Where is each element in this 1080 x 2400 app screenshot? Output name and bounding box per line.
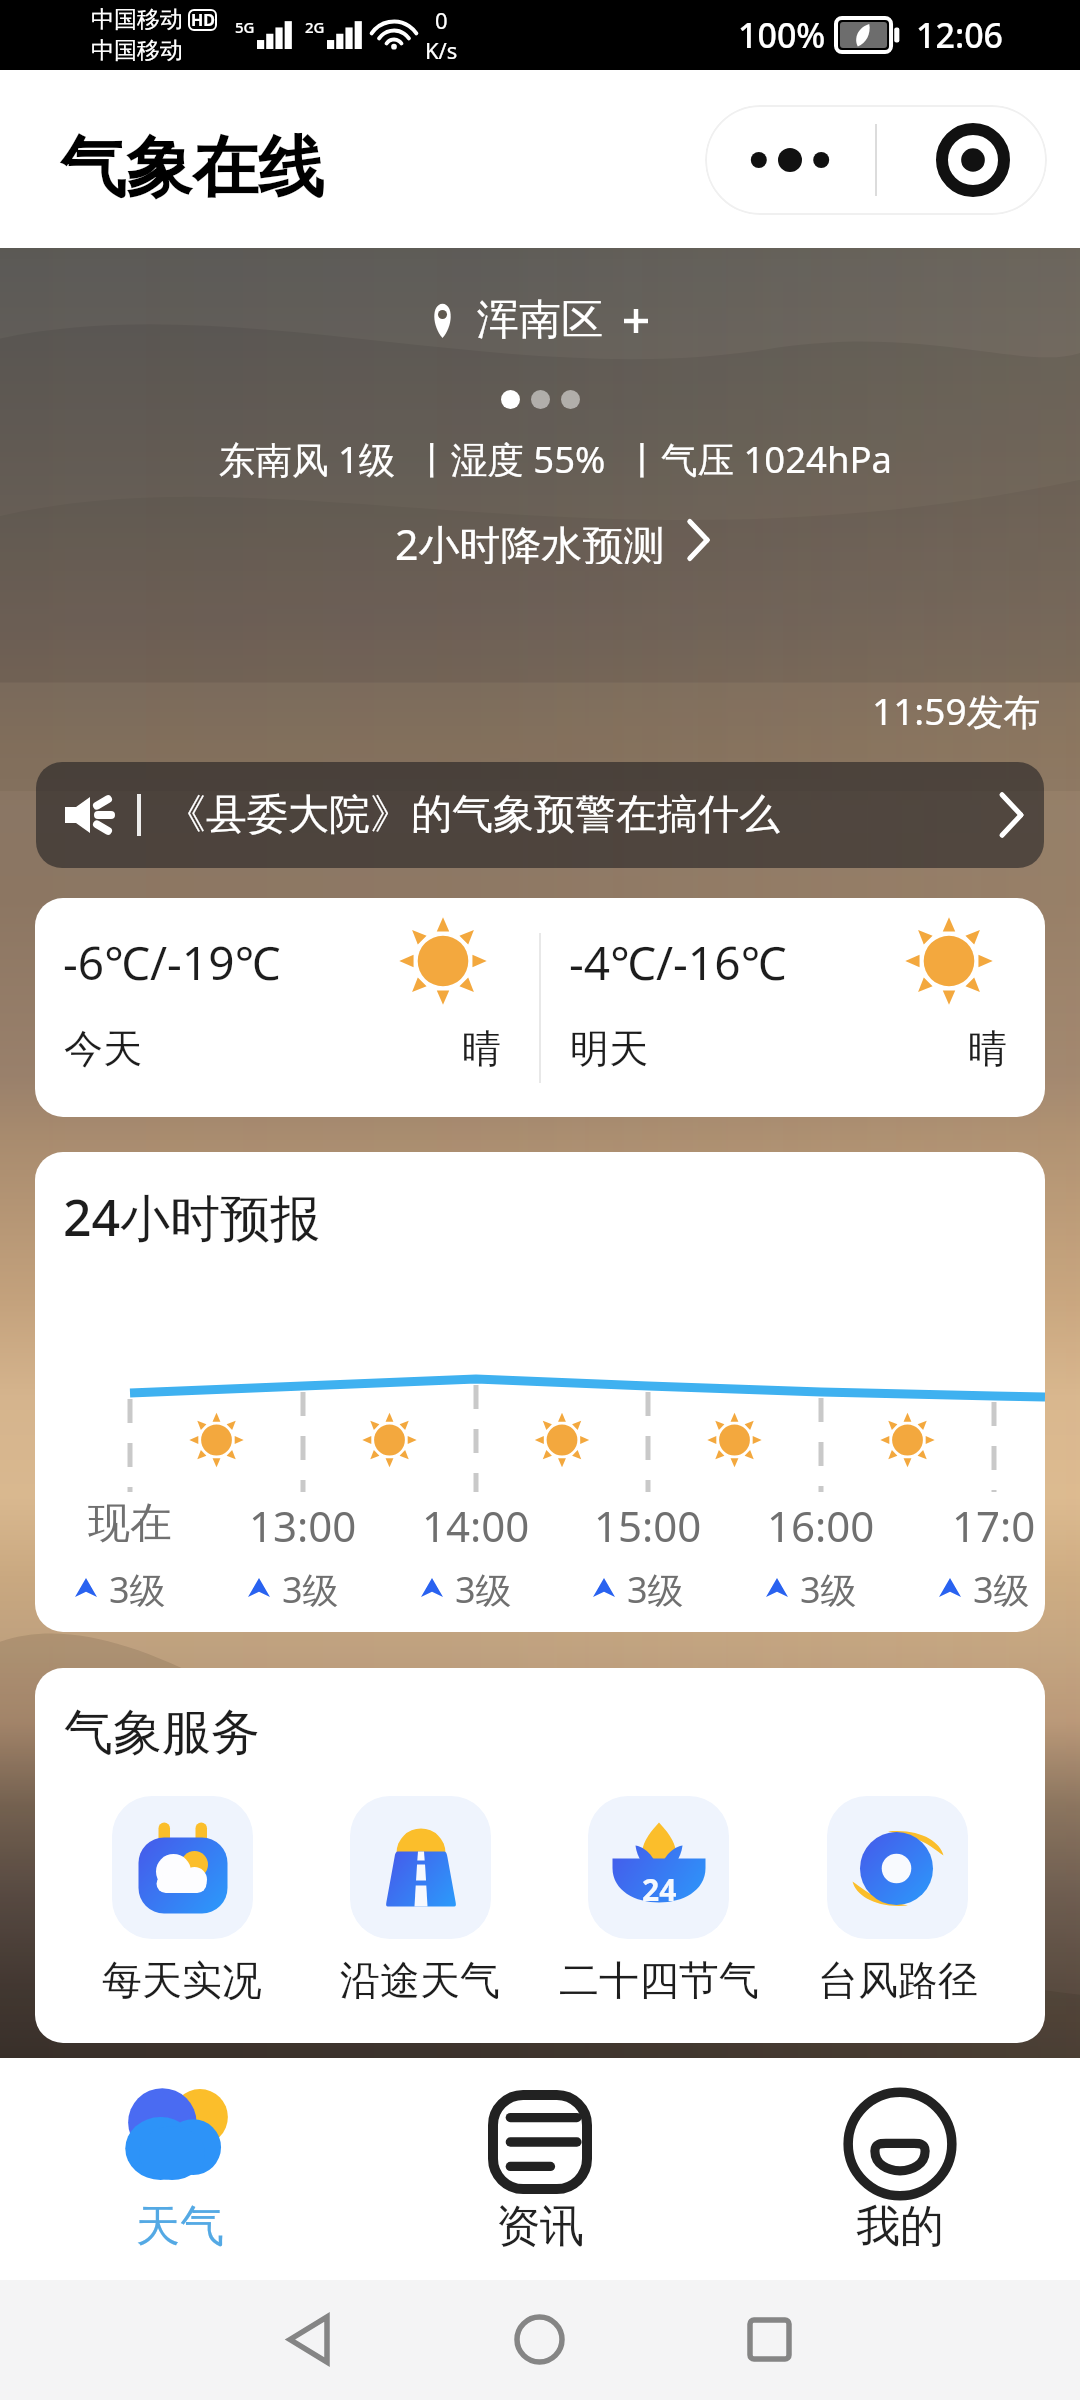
staticText: 11:59发布: [872, 685, 1041, 736]
staticText: -6℃/-19℃: [63, 931, 281, 994]
button[interactable]: 资讯: [360, 2058, 720, 2280]
staticText: HD: [191, 9, 215, 31]
staticText: 3级: [800, 1565, 857, 1609]
staticText: 3级: [282, 1565, 339, 1609]
staticText: 0: [435, 5, 448, 35]
button[interactable]: 24: [539, 1796, 778, 2005]
other: Close mini program: [936, 123, 1010, 197]
staticText: 3级: [627, 1565, 684, 1609]
button[interactable]: 天气: [0, 2058, 360, 2280]
staticText: 晴: [968, 1024, 1007, 1073]
button[interactable]: -4℃/-16℃: [541, 898, 1045, 1117]
staticText: 浑南区: [477, 294, 603, 347]
staticText: 气象服务: [64, 1702, 260, 1764]
staticText: 现在: [88, 1497, 172, 1550]
button[interactable]: Back: [287, 2315, 330, 2364]
staticText: 我的: [856, 2199, 944, 2254]
staticText: 3级: [973, 1565, 1030, 1609]
staticText: 2G: [305, 17, 325, 37]
button[interactable]: More: [705, 105, 1047, 215]
staticText: 3级: [455, 1565, 512, 1609]
button[interactable]: 我的: [720, 2058, 1080, 2280]
staticText: 17:0: [952, 1497, 1036, 1554]
staticText: 24: [642, 1869, 677, 1910]
button[interactable]: 每天实况: [63, 1796, 301, 2005]
staticText: 气象在线: [60, 126, 324, 209]
staticText: 资讯: [496, 2199, 584, 2254]
staticText: 台风路径: [818, 1955, 978, 2005]
staticText: 《县委大院》的气象预警在搞什么: [165, 789, 999, 841]
staticText: 二十四节气: [559, 1955, 759, 2005]
button[interactable]: 台风路径: [778, 1796, 1017, 2005]
button[interactable]: 沿途天气: [301, 1796, 539, 2005]
staticText: 明天: [570, 1024, 648, 1073]
button[interactable]: 浑南区: [432, 294, 649, 347]
staticText: 15:00: [594, 1497, 702, 1554]
staticText: 100%: [738, 12, 826, 58]
staticText: 东南风 1级 丨湿度 55% 丨气压 1024hPa: [219, 434, 893, 484]
staticText: 沿途天气: [340, 1955, 500, 2005]
staticText: 5G: [235, 17, 255, 37]
staticText: 14:00: [422, 1497, 530, 1554]
staticText: -4℃/-16℃: [569, 931, 787, 994]
staticText: 晴: [462, 1024, 501, 1073]
button[interactable]: Home: [514, 2314, 565, 2365]
staticText: 13:00: [249, 1497, 357, 1554]
other: Add city: [623, 308, 649, 334]
button[interactable]: Recent apps: [747, 2317, 792, 2362]
staticText: 每天实况: [102, 1955, 262, 2005]
staticText: 今天: [64, 1024, 142, 1073]
other: More: [751, 145, 829, 175]
staticText: K/s: [425, 35, 458, 65]
button[interactable]: -6℃/-19℃: [35, 898, 539, 1117]
staticText: 12:06: [916, 12, 1004, 58]
staticText: 3级: [109, 1565, 166, 1609]
button[interactable]: 2小时降水预测: [389, 512, 716, 568]
staticText: 中国移动: [91, 36, 183, 65]
staticText: 16:00: [767, 1497, 875, 1554]
staticText: 24小时预报: [63, 1183, 321, 1251]
button[interactable]: 《县委大院》的气象预警在搞什么: [36, 762, 1044, 868]
staticText: 2小时降水预测: [395, 516, 665, 564]
staticText: 中国移动: [91, 5, 183, 34]
staticText: 天气: [136, 2199, 224, 2254]
